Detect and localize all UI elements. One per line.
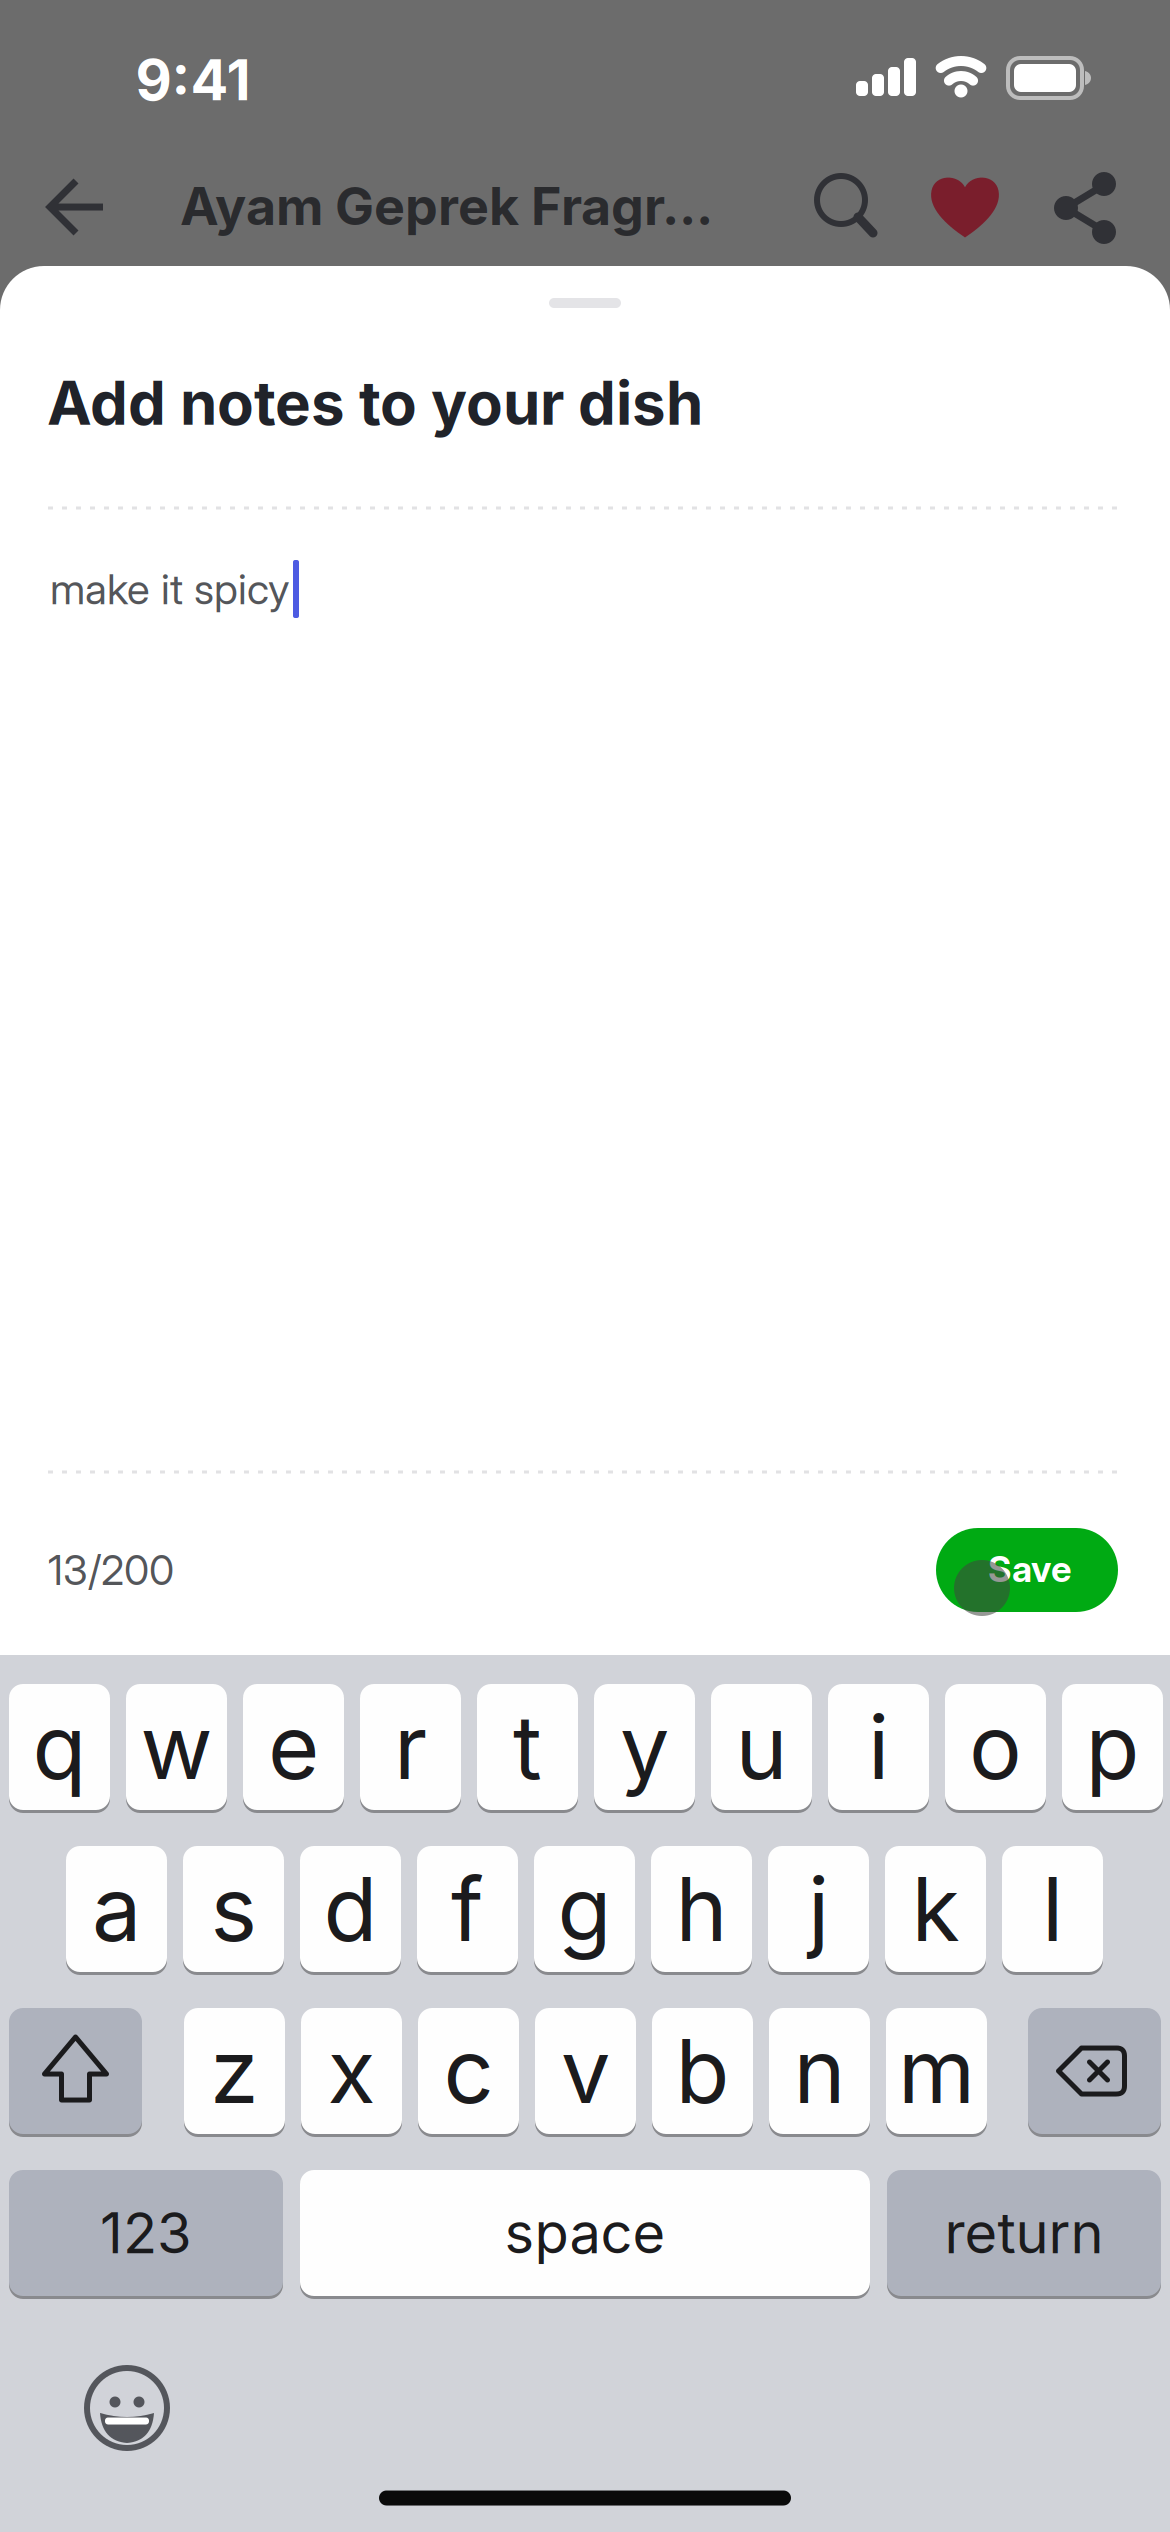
- staticText: Ayam Geprek Fragr...: [180, 174, 713, 237]
- staticText: b: [675, 2018, 729, 2124]
- staticText: k: [911, 1856, 959, 1962]
- staticText: d: [323, 1856, 377, 1962]
- staticText: w: [140, 1694, 212, 1800]
- staticText: y: [620, 1694, 669, 1800]
- staticText: g: [557, 1856, 611, 1962]
- staticText: 123: [100, 2199, 192, 2267]
- staticText: u: [735, 1694, 787, 1800]
- staticText: i: [868, 1694, 889, 1800]
- staticText: Save: [988, 1547, 1072, 1591]
- staticText: v: [561, 2018, 610, 2124]
- staticText: 13/200: [48, 1545, 174, 1595]
- staticText: s: [210, 1856, 256, 1962]
- staticText: c: [443, 2018, 493, 2124]
- staticText: f: [451, 1856, 484, 1962]
- staticText: q: [32, 1694, 86, 1800]
- staticText: h: [675, 1856, 727, 1962]
- staticText: a: [92, 1856, 141, 1962]
- staticText: 9:41: [135, 46, 250, 114]
- staticText: make it spicy: [50, 564, 290, 614]
- staticText: x: [327, 2018, 375, 2124]
- staticText: r: [394, 1694, 427, 1800]
- staticText: space: [504, 2199, 665, 2267]
- staticText: o: [969, 1694, 1022, 1800]
- staticText: Add notes to your dish: [47, 367, 703, 439]
- staticText: j: [808, 1856, 829, 1962]
- staticText: l: [1042, 1856, 1063, 1962]
- staticText: e: [268, 1694, 319, 1800]
- staticText: t: [513, 1694, 542, 1800]
- staticText: n: [793, 2018, 845, 2124]
- staticText: m: [898, 2018, 975, 2124]
- staticText: return: [944, 2199, 1103, 2267]
- staticText: z: [210, 2018, 259, 2124]
- staticText: p: [1085, 1694, 1139, 1800]
